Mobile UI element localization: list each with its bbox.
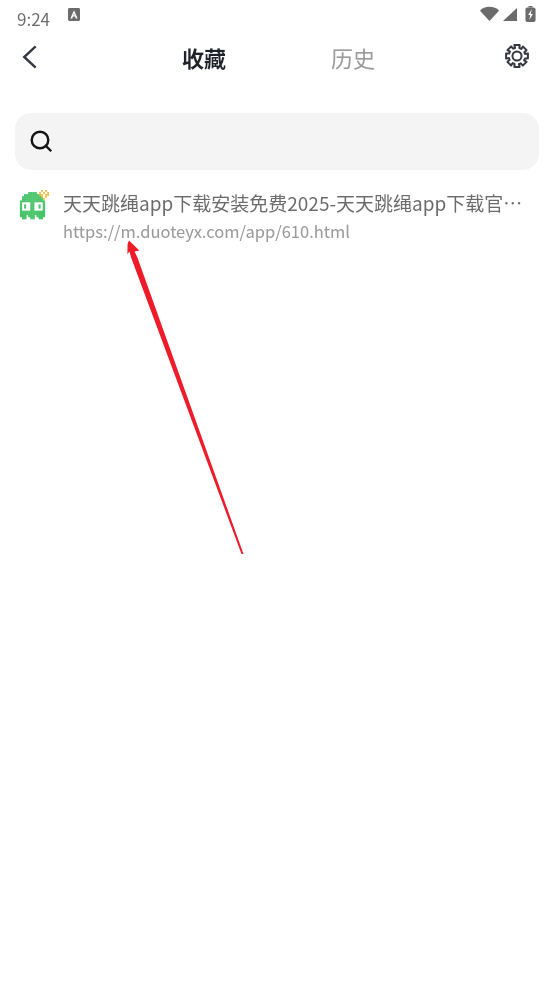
- staticText: 9:24: [17, 6, 51, 31]
- button[interactable]: 历史: [321, 35, 386, 79]
- staticText: https://m.duoteyx.com/app/610.html: [63, 219, 350, 243]
- staticText: 天天跳绳app下载安装免费2025-天天跳绳app下载官…: [63, 189, 523, 217]
- button[interactable]: Search: [15, 113, 539, 170]
- button[interactable]: Settings: [491, 28, 543, 84]
- button[interactable]: 收藏: [172, 35, 237, 79]
- staticText: 收藏: [182, 41, 227, 73]
- button[interactable]: 天天跳绳app下载安装免费2025-天天跳绳app下载官…: [0, 182, 554, 246]
- staticText: 历史: [331, 41, 376, 73]
- button[interactable]: Back: [4, 29, 54, 85]
